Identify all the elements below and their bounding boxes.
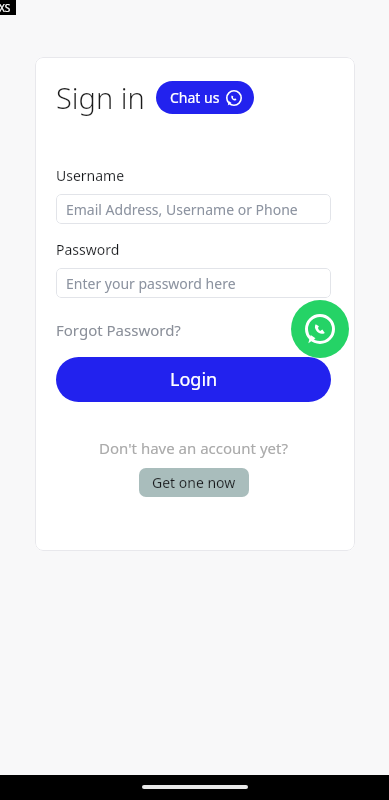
button[interactable]: Email Address, Username or Phone Number (56, 194, 331, 224)
staticText: Sign in (56, 78, 145, 117)
button[interactable]: Forgot Password? (56, 320, 181, 340)
button[interactable]: Enter your password here (56, 268, 331, 298)
button[interactable]: Get one now (139, 468, 249, 497)
staticText: Email Address, Username or Phone Number (66, 200, 321, 219)
staticText: Login (170, 367, 218, 392)
staticText: Username (56, 166, 125, 185)
staticText: Forgot Password? (56, 320, 181, 340)
staticText: Don't have an account yet? (56, 438, 331, 458)
staticText: Enter your password here (66, 274, 236, 293)
button[interactable]: Login (56, 357, 331, 402)
button[interactable]: Chat us (156, 81, 254, 114)
button[interactable]: Chat on WhatsApp (291, 300, 349, 358)
staticText: XS (0, 1, 11, 15)
staticText: Password (56, 240, 120, 259)
staticText: Get one now (152, 473, 236, 492)
staticText: Chat us (170, 88, 220, 107)
